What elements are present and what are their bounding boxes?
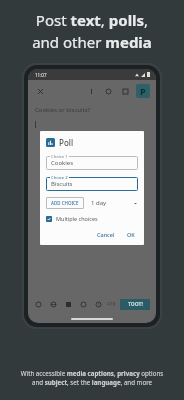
staticText: Cancel — [97, 231, 115, 238]
button[interactable]: Attach media — [34, 300, 43, 309]
staticText: and other media — [0, 32, 184, 52]
button[interactable]: Visibility — [49, 300, 58, 309]
button[interactable]: Add poll — [64, 300, 73, 309]
button[interactable]: Visibility — [103, 86, 113, 96]
staticText: TOOT! — [128, 301, 143, 308]
staticText: Poll — [59, 137, 74, 148]
button[interactable]: ADD CHOICE — [51, 200, 79, 206]
staticText: Multiple choices — [56, 215, 98, 222]
button[interactable]: TOOT! — [120, 299, 150, 310]
staticText: With accessible media captions, privacy … — [0, 369, 184, 377]
button[interactable]: Schedule — [94, 300, 103, 309]
button[interactable]: Multiple choices — [46, 215, 98, 222]
staticText: 478 — [107, 301, 116, 308]
button[interactable]: OK — [124, 230, 138, 239]
button[interactable]: Close — [34, 85, 46, 97]
button[interactable]: Choice 1 — [46, 154, 138, 170]
staticText: 11:07 — [35, 72, 47, 78]
button[interactable]: Language — [120, 86, 130, 96]
button[interactable]: Cancel — [94, 230, 118, 239]
staticText: Choice 2 — [51, 175, 68, 181]
staticText: ADD CHOICE — [51, 200, 79, 206]
staticText: and subject, set the language, and more — [0, 378, 184, 386]
staticText: 1 day — [91, 199, 107, 207]
button[interactable]: Duration — [132, 200, 138, 206]
button[interactable]: Subject — [86, 86, 96, 96]
button[interactable]: Account — [136, 84, 150, 98]
button[interactable]: Choice 2 — [46, 175, 138, 191]
staticText: Biscuits — [51, 180, 73, 188]
staticText: Cookies — [51, 159, 74, 167]
staticText: Choice 1 — [51, 154, 68, 160]
staticText: Cookies or biscuits? — [35, 106, 91, 114]
staticText: Post text, polls, — [0, 10, 184, 30]
staticText: P — [140, 85, 146, 97]
staticText: OK — [127, 231, 135, 238]
button[interactable]: Emoji — [79, 300, 88, 309]
